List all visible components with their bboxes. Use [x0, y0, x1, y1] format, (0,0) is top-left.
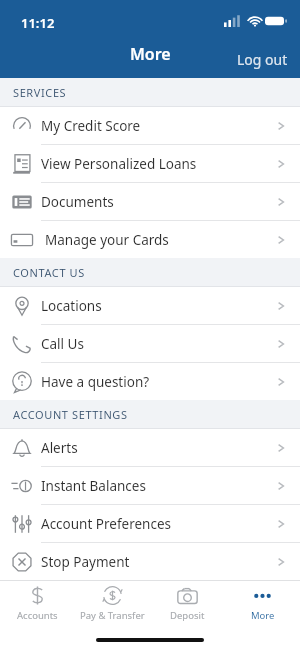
- button[interactable]: Call Us: [0, 325, 300, 362]
- button[interactable]: View Personalized Loans: [0, 145, 300, 182]
- staticText: Documents: [41, 193, 114, 211]
- staticText: Deposit: [170, 609, 205, 622]
- button[interactable]: Alerts: [0, 429, 300, 466]
- button[interactable]: Locations: [0, 287, 300, 324]
- staticText: Account Preferences: [41, 515, 171, 533]
- staticText: Instant Balances: [41, 477, 146, 495]
- button[interactable]: Pay & Transfer: [75, 583, 150, 622]
- button[interactable]: Have a question?: [0, 363, 300, 400]
- staticText: Accounts: [17, 609, 58, 622]
- button[interactable]: Instant Balances: [0, 467, 300, 504]
- staticText: 11:12: [21, 14, 55, 32]
- staticText: Pay & Transfer: [80, 609, 145, 622]
- staticText: Stop Payment: [41, 553, 130, 571]
- staticText: My Credit Score: [41, 117, 141, 135]
- staticText: Alerts: [41, 439, 78, 457]
- button[interactable]: Account Preferences: [0, 505, 300, 542]
- button[interactable]: Accounts: [0, 583, 75, 622]
- staticText: Have a question?: [41, 373, 150, 391]
- staticText: ACCOUNT SETTINGS: [13, 407, 128, 422]
- staticText: View Personalized Loans: [41, 155, 197, 173]
- button[interactable]: Stop Payment: [0, 543, 300, 580]
- staticText: More: [251, 609, 275, 622]
- button[interactable]: My Credit Score: [0, 107, 300, 144]
- staticText: SERVICES: [13, 85, 67, 100]
- staticText: Log out: [237, 50, 288, 69]
- button[interactable]: Manage your Cards: [0, 221, 300, 258]
- button[interactable]: Documents: [0, 183, 300, 220]
- button[interactable]: More: [225, 583, 300, 622]
- staticText: CONTACT US: [13, 265, 85, 280]
- staticText: More: [130, 43, 171, 65]
- button[interactable]: Log out: [227, 42, 300, 78]
- staticText: Call Us: [41, 335, 84, 353]
- button[interactable]: Deposit: [150, 583, 225, 622]
- staticText: Locations: [41, 297, 102, 315]
- staticText: Manage your Cards: [45, 231, 169, 249]
